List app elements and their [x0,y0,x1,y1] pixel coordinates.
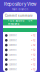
staticText: commit [9,48,17,51]
staticText: +128 added -34 removed [7,19,32,26]
staticText: commit [9,58,17,61]
staticText: Repository View [4,2,36,7]
staticText: commit [9,39,17,42]
staticText: +12 [31,44,35,47]
staticText: +12 [31,48,35,51]
staticText: main branch [11,8,28,11]
staticText: commit [9,34,17,37]
staticText: +12 [31,39,35,42]
staticText: +12 [31,53,35,56]
staticText: +12 [31,63,35,66]
staticText: Commit summary [5,14,33,17]
staticText: commit [9,53,17,56]
staticText: +12 [31,68,35,71]
staticText: +12 [31,34,35,37]
staticText: commit [9,44,17,47]
staticText: +12 [31,58,35,61]
staticText: commit [9,63,17,66]
staticText: commit [9,68,17,71]
